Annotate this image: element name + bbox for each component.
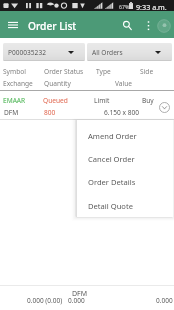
button[interactable]: Search	[119, 17, 136, 33]
button[interactable]: Amend Order	[77, 124, 173, 147]
staticText: Order Status	[44, 67, 84, 76]
staticText: Amend Order	[88, 131, 137, 141]
staticText: All Orders	[92, 48, 123, 57]
staticText: Order Details	[88, 177, 136, 187]
staticText: P000035232	[8, 48, 46, 57]
button[interactable]: Order Details	[77, 170, 173, 193]
staticText: Limit	[94, 96, 110, 105]
staticText: 0.000 (0.00)	[27, 296, 63, 305]
staticText: EMAAR	[3, 96, 26, 105]
staticText: Symbol	[3, 67, 26, 76]
button[interactable]: Expand order actions	[159, 102, 170, 113]
staticText: Order List	[28, 19, 77, 33]
staticText: Type	[96, 67, 111, 76]
button[interactable]: Cancel Order	[77, 147, 173, 170]
button[interactable]: DFM	[0, 286, 174, 310]
button[interactable]: All Orders	[87, 43, 172, 61]
button[interactable]: P000035232	[3, 43, 85, 61]
staticText: Detail Quote	[88, 201, 133, 211]
staticText: Queued	[43, 96, 68, 105]
button[interactable]: Navigation menu	[5, 18, 21, 32]
staticText: Side	[140, 67, 154, 76]
staticText: Quantity	[44, 79, 71, 88]
button[interactable]: EMAAR	[0, 93, 174, 120]
staticText: DFM	[4, 108, 19, 117]
staticText: Cancel Order	[88, 154, 135, 164]
staticText: 9:33 a.m.	[136, 2, 167, 12]
staticText: Exchange	[3, 79, 33, 88]
staticText: 67%	[119, 3, 130, 10]
staticText: 0.000	[68, 296, 85, 305]
staticText: Buy	[142, 96, 154, 105]
staticText: 0.000	[156, 296, 173, 305]
button[interactable]: Menu ripple	[157, 19, 171, 33]
button[interactable]: More options	[141, 17, 156, 33]
staticText: 800	[44, 108, 56, 117]
staticText: 6.150 x 800	[104, 108, 140, 117]
staticText: Value	[115, 79, 133, 88]
staticText: DFM	[72, 289, 88, 299]
button[interactable]: Detail Quote	[77, 194, 173, 217]
